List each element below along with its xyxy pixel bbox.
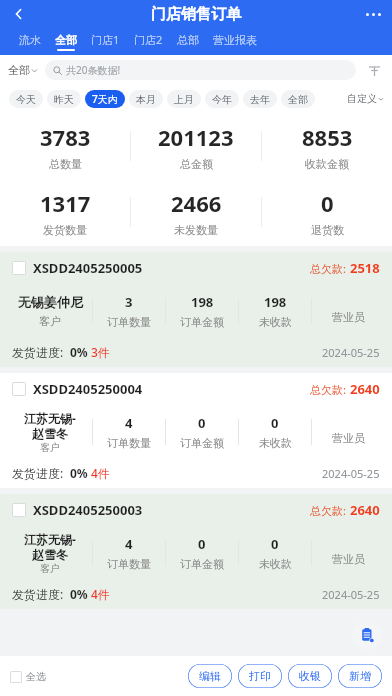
- staticText: 今天: [16, 93, 36, 106]
- staticText: 2640: [350, 501, 380, 519]
- staticText: 门店1: [91, 32, 120, 47]
- staticText: 2024-05-25: [322, 466, 380, 481]
- button[interactable]: Back: [0, 0, 38, 28]
- staticText: 营业报表: [213, 33, 257, 47]
- staticText: 0: [198, 535, 206, 553]
- staticText: 201123: [158, 122, 234, 152]
- staticText: 7天内: [92, 92, 118, 106]
- staticText: 退货数: [311, 223, 344, 237]
- button[interactable]: Select order: [12, 503, 26, 517]
- staticText: 订单金额: [180, 436, 224, 450]
- button[interactable]: Filter: [364, 60, 384, 80]
- button[interactable]: Select order: [0, 252, 392, 367]
- button[interactable]: 打印: [238, 664, 282, 688]
- staticText: 江苏无锡-: [24, 410, 76, 426]
- staticText: 营业员: [332, 552, 365, 566]
- staticText: 4件: [91, 586, 110, 602]
- button[interactable]: 全部: [8, 63, 37, 77]
- staticText: 江苏无锡-: [24, 531, 76, 547]
- staticText: 3783: [40, 122, 91, 152]
- staticText: 0: [271, 535, 279, 553]
- staticText: 198: [191, 293, 214, 311]
- button[interactable]: 全部: [281, 90, 315, 108]
- staticText: 未收款: [259, 436, 292, 450]
- button[interactable]: 今天: [9, 90, 43, 108]
- button[interactable]: 收银: [288, 664, 332, 688]
- staticText: 发货进度:: [12, 465, 64, 481]
- button[interactable]: 201123: [131, 122, 261, 171]
- staticText: 2640: [350, 380, 380, 398]
- staticText: 编辑: [199, 669, 221, 683]
- staticText: 共20条数据!: [66, 63, 121, 77]
- button[interactable]: 编辑: [188, 664, 232, 688]
- button[interactable]: Select order: [0, 494, 392, 609]
- button[interactable]: 今年: [205, 90, 239, 108]
- button[interactable]: More options: [354, 0, 392, 28]
- button[interactable]: 共20条数据!: [45, 60, 356, 80]
- staticText: 发货数量: [43, 223, 87, 237]
- button[interactable]: Select order: [12, 261, 26, 275]
- button[interactable]: Select order: [0, 373, 392, 488]
- staticText: 总欠款:: [310, 503, 346, 518]
- staticText: 2024-05-25: [322, 587, 380, 602]
- staticText: 客户: [40, 562, 60, 575]
- staticText: 门店2: [134, 32, 163, 47]
- staticText: 无锡姜仲尼: [18, 294, 83, 310]
- staticText: 1317: [40, 188, 91, 218]
- staticText: 客户: [40, 441, 60, 454]
- button[interactable]: 上月: [167, 90, 201, 108]
- staticText: 3件: [91, 344, 110, 360]
- staticText: 总金额: [180, 157, 213, 171]
- staticText: 本月: [136, 93, 156, 106]
- staticText: 4: [125, 414, 133, 432]
- button[interactable]: 门店1: [91, 28, 120, 55]
- staticText: 未收款: [259, 557, 292, 571]
- staticText: 总数量: [49, 157, 82, 171]
- staticText: XSDD2405250003: [33, 501, 143, 519]
- staticText: 收款金额: [305, 157, 349, 171]
- staticText: 收银: [299, 669, 321, 683]
- button[interactable]: 0: [262, 188, 392, 237]
- button[interactable]: 7天内: [85, 90, 125, 108]
- button[interactable]: 2466: [131, 188, 261, 237]
- staticText: 订单金额: [180, 557, 224, 571]
- button[interactable]: Order notes: [352, 620, 382, 650]
- staticText: 0%: [70, 344, 88, 360]
- staticText: 去年: [250, 93, 270, 106]
- staticText: 全部: [8, 63, 30, 77]
- staticText: 赵雪冬: [32, 547, 68, 562]
- staticText: 0: [198, 414, 206, 432]
- staticText: 赵雪冬: [32, 426, 68, 441]
- staticText: XSDD2405250004: [33, 380, 143, 398]
- button[interactable]: 1317: [0, 188, 130, 237]
- staticText: 总欠款:: [310, 261, 346, 276]
- staticText: 未发数量: [174, 223, 218, 237]
- staticText: 昨天: [54, 93, 74, 106]
- button[interactable]: Select order: [12, 382, 26, 396]
- staticText: 2518: [350, 259, 380, 277]
- staticText: 订单数量: [107, 315, 151, 329]
- staticText: 未收款: [259, 315, 292, 329]
- staticText: 4: [125, 535, 133, 553]
- button[interactable]: 总部: [177, 28, 199, 55]
- staticText: 今年: [212, 93, 232, 106]
- button[interactable]: 昨天: [47, 90, 81, 108]
- button[interactable]: 全部: [55, 28, 77, 55]
- button[interactable]: 全选: [10, 670, 46, 683]
- button[interactable]: 门店2: [134, 28, 163, 55]
- staticText: 全部: [55, 33, 77, 47]
- button[interactable]: 3783: [0, 122, 130, 171]
- button[interactable]: 8853: [262, 122, 392, 171]
- button[interactable]: 新增: [338, 664, 382, 688]
- button[interactable]: 营业报表: [213, 28, 257, 55]
- staticText: XSDD2405250005: [33, 259, 143, 277]
- button[interactable]: 本月: [129, 90, 163, 108]
- staticText: 总欠款:: [310, 382, 346, 397]
- staticText: 4件: [91, 465, 110, 481]
- button[interactable]: 去年: [243, 90, 277, 108]
- button[interactable]: 自定义: [347, 92, 385, 105]
- staticText: 198: [264, 293, 287, 311]
- button[interactable]: 流水: [19, 28, 41, 55]
- staticText: 0%: [70, 465, 88, 481]
- staticText: 全选: [26, 670, 46, 683]
